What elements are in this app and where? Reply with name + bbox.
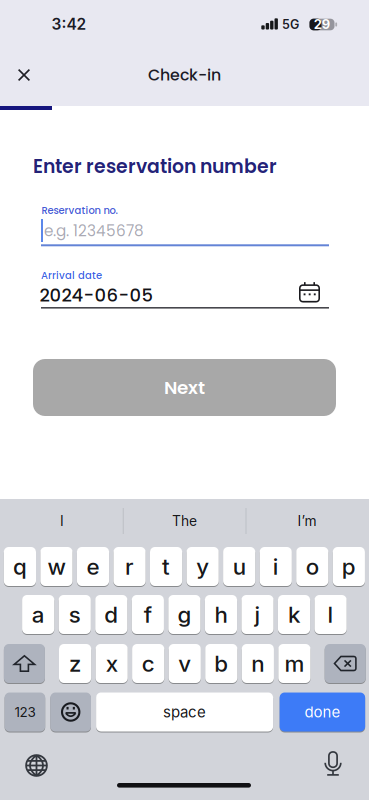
staticText: Reservation no.	[41, 203, 117, 217]
button[interactable]: a	[22, 594, 54, 635]
staticText: f	[144, 601, 152, 628]
staticText: 123	[14, 704, 35, 720]
button[interactable]: j	[241, 594, 274, 635]
button[interactable]: Emoji	[50, 691, 91, 732]
button[interactable]: Delete	[325, 643, 366, 684]
staticText: done	[304, 703, 340, 721]
staticText: 2024-06-05	[39, 283, 153, 308]
button[interactable]: n	[242, 643, 274, 684]
button[interactable]: Close	[10, 61, 38, 89]
button[interactable]: I	[3, 504, 121, 538]
button[interactable]: y	[187, 546, 219, 587]
staticText: w	[47, 553, 65, 580]
staticText: v	[178, 650, 191, 677]
staticText: n	[251, 650, 264, 677]
button[interactable]: t	[150, 546, 182, 587]
button[interactable]: b	[205, 643, 237, 684]
staticText: q	[13, 553, 27, 580]
staticText: space	[163, 703, 206, 721]
button[interactable]: q	[4, 546, 36, 587]
staticText: Arrival date	[41, 268, 102, 282]
staticText: I’m	[297, 513, 316, 529]
button[interactable]: l	[314, 594, 347, 635]
staticText: Enter reservation number	[33, 153, 277, 180]
button[interactable]: d	[95, 594, 127, 635]
button[interactable]: u	[223, 546, 255, 587]
button[interactable]: space	[96, 691, 273, 732]
staticText: k	[288, 601, 300, 628]
staticText: j	[254, 601, 260, 628]
button[interactable]: o	[296, 546, 328, 587]
button[interactable]: i	[260, 546, 292, 587]
staticText: I	[60, 513, 64, 529]
button[interactable]: x	[95, 643, 128, 684]
button[interactable]: z	[59, 643, 91, 684]
button[interactable]: Reservation no.	[41, 203, 329, 247]
staticText: z	[69, 650, 81, 677]
staticText: Next	[164, 375, 205, 400]
button[interactable]: h	[205, 594, 237, 635]
staticText: 5G	[282, 17, 299, 32]
button[interactable]: g	[168, 594, 200, 635]
button[interactable]: e	[77, 546, 109, 587]
staticText: r	[125, 553, 134, 580]
staticText: p	[342, 553, 356, 580]
staticText: t	[162, 553, 170, 580]
staticText: i	[273, 553, 279, 580]
button[interactable]: s	[59, 594, 91, 635]
staticText: e	[86, 553, 99, 580]
button[interactable]: p	[333, 546, 365, 587]
staticText: 29	[314, 16, 330, 32]
button[interactable]: Next	[33, 359, 336, 416]
staticText: y	[196, 553, 209, 580]
staticText: g	[177, 601, 191, 628]
staticText: h	[214, 601, 227, 628]
staticText: u	[233, 553, 246, 580]
staticText: The	[172, 513, 197, 529]
staticText: s	[69, 601, 81, 628]
button[interactable]: Arrival date	[41, 268, 329, 310]
button[interactable]: I’m	[248, 504, 366, 538]
staticText: 3:42	[51, 15, 86, 33]
button[interactable]: w	[40, 546, 72, 587]
staticText: x	[106, 650, 118, 677]
staticText: Check-in	[148, 64, 221, 86]
staticText: l	[328, 601, 334, 628]
staticText: b	[214, 650, 228, 677]
button[interactable]: Numbers	[5, 691, 45, 732]
button[interactable]: k	[278, 594, 310, 635]
staticText: m	[284, 650, 304, 677]
button[interactable]: v	[169, 643, 201, 684]
button[interactable]: f	[132, 594, 164, 635]
button[interactable]: Dictation	[318, 745, 347, 782]
button[interactable]: m	[278, 643, 310, 684]
staticText: d	[104, 601, 118, 628]
button[interactable]: Next keyboard	[19, 748, 54, 783]
staticText: e.g. 12345678	[44, 220, 144, 242]
staticText: o	[306, 553, 319, 580]
button[interactable]: Shift	[4, 643, 45, 684]
button[interactable]: The	[125, 504, 243, 538]
button[interactable]: c	[132, 643, 164, 684]
button[interactable]: done	[280, 691, 365, 732]
staticText: c	[142, 650, 155, 677]
staticText: a	[32, 601, 45, 628]
button[interactable]: r	[113, 546, 146, 587]
